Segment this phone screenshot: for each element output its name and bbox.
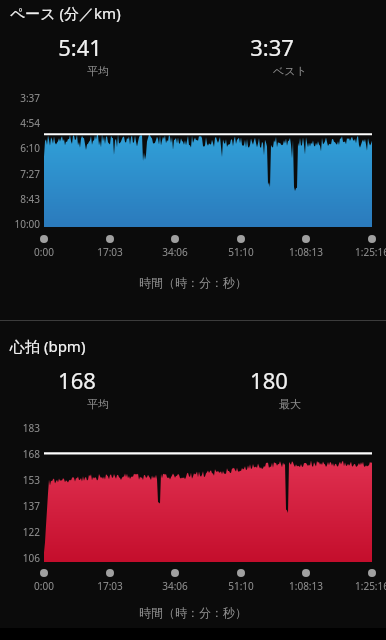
staticText: 168 [2, 447, 40, 461]
staticText: 0:00 [9, 579, 79, 593]
staticText: 51:10 [206, 579, 276, 593]
button[interactable]: 心拍 (bpm) [10, 336, 86, 356]
staticText: 10:00 [2, 217, 40, 231]
staticText: 3:37 [2, 91, 40, 105]
staticText: 時間（時：分：秒） [0, 605, 386, 620]
staticText: ペース (分／km) [10, 3, 121, 23]
staticText: 34:06 [140, 579, 210, 593]
staticText: 0:00 [9, 245, 79, 259]
staticText: 心拍 (bpm) [10, 336, 86, 356]
button[interactable]: 168 [58, 365, 138, 395]
staticText: 1:25:16 [337, 245, 386, 259]
staticText: 180 [250, 365, 288, 395]
staticText: 17:03 [75, 579, 145, 593]
staticText: 168 [58, 365, 96, 395]
staticText: 183 [2, 421, 40, 435]
button[interactable]: ペース (分／km) [10, 3, 121, 23]
staticText: 137 [2, 499, 40, 513]
staticText: 106 [2, 551, 40, 565]
other: Pace chart [44, 96, 372, 227]
staticText: 51:10 [206, 245, 276, 259]
staticText: 34:06 [140, 245, 210, 259]
button[interactable]: 5:41 [58, 32, 138, 62]
staticText: 5:41 [58, 32, 102, 62]
staticText: 1:08:13 [271, 579, 341, 593]
staticText: 17:03 [75, 245, 145, 259]
staticText: 122 [2, 525, 40, 539]
button[interactable]: 180 [250, 365, 330, 395]
staticText: 153 [2, 473, 40, 487]
staticText: 1:25:16 [337, 579, 386, 593]
staticText: 6:10 [2, 141, 40, 155]
staticText: 平均 [58, 64, 138, 78]
staticText: 8:43 [2, 192, 40, 206]
button[interactable]: 3:37 [250, 32, 330, 62]
staticText: 時間（時：分：秒） [0, 275, 386, 290]
staticText: 3:37 [250, 32, 294, 62]
staticText: 7:27 [2, 167, 40, 181]
staticText: 1:08:13 [271, 245, 341, 259]
other: Heart rate chart [44, 426, 372, 562]
staticText: ベスト [250, 64, 330, 78]
staticText: 最大 [250, 397, 330, 411]
staticText: 4:54 [2, 116, 40, 130]
staticText: 平均 [58, 397, 138, 411]
